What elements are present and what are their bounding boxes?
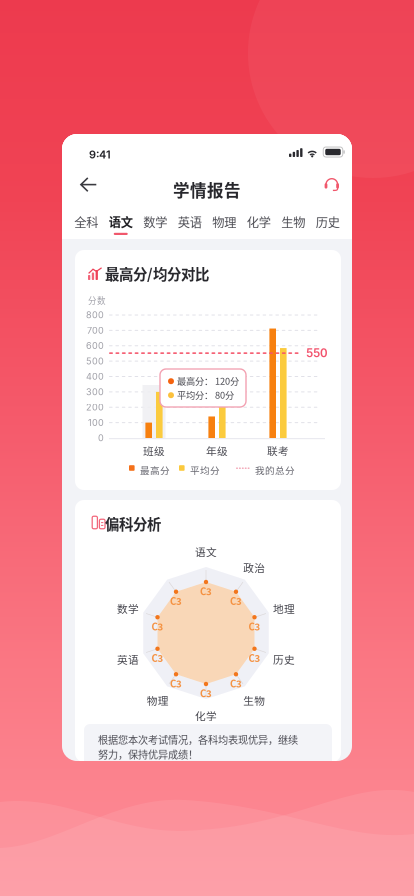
staticText: 英语 [117, 651, 139, 667]
staticText: C3 [170, 594, 182, 608]
staticText: 政治 [243, 560, 265, 575]
staticText: C3 [200, 686, 212, 700]
staticText: 平均分： 80分 [177, 388, 234, 401]
staticText: 语文 [195, 544, 217, 559]
staticText: 500 [86, 356, 104, 367]
staticText: 年级 [206, 443, 228, 458]
staticText: 分数 [88, 294, 106, 306]
button[interactable]: Customer service [308, 172, 344, 207]
staticText: 物理 [147, 692, 169, 708]
button[interactable]: 语文 [103, 208, 138, 240]
staticText: 语文 [109, 213, 133, 231]
staticText: C3 [170, 676, 182, 690]
staticText: C3 [248, 619, 260, 633]
staticText: 班级 [143, 443, 165, 458]
button[interactable]: 英语 [172, 208, 207, 240]
staticText: 最高分/均分对比 [105, 263, 209, 284]
staticText: 学情报告 [173, 177, 241, 201]
staticText: 化学 [247, 213, 271, 231]
staticText: 物理 [212, 213, 236, 231]
staticText: C3 [200, 584, 212, 598]
staticText: 600 [86, 340, 104, 351]
staticText: 地理 [273, 601, 295, 616]
button[interactable]: 生物 [276, 208, 310, 240]
staticText: 数学 [143, 213, 167, 231]
button[interactable]: 化学 [241, 208, 276, 240]
staticText: 英语 [178, 213, 202, 231]
staticText: 400 [86, 371, 104, 382]
staticText: 300 [86, 386, 104, 397]
staticText: 生物 [243, 692, 265, 708]
staticText: 根据您本次考试情况，各科均表现优异，继续 努力，保持优异成绩！ [98, 732, 298, 761]
staticText: 700 [87, 325, 104, 336]
staticText: 100 [88, 417, 104, 428]
staticText: C3 [151, 619, 163, 633]
staticText: 200 [86, 402, 104, 413]
button[interactable]: Back [62, 172, 104, 207]
staticText: 历史 [273, 651, 295, 667]
staticText: 我的总分 [255, 463, 295, 477]
staticText: 平均分 [190, 463, 220, 477]
staticText: 最高分 [140, 463, 170, 477]
staticText: C3 [151, 651, 163, 665]
staticText: C3 [230, 676, 242, 690]
button[interactable]: 数学 [138, 208, 172, 240]
staticText: 历史 [316, 213, 340, 231]
staticText: 800 [86, 309, 104, 320]
staticText: 0 [98, 432, 104, 443]
staticText: C3 [230, 594, 242, 608]
button[interactable]: 历史 [310, 208, 345, 240]
staticText: 联考 [267, 443, 289, 458]
button[interactable]: 物理 [207, 208, 241, 240]
staticText: 全科 [74, 213, 98, 231]
staticText: 化学 [195, 708, 217, 723]
staticText: 生物 [281, 213, 305, 231]
staticText: 数学 [117, 601, 139, 616]
staticText: 最高分： 120分 [177, 374, 239, 387]
staticText: 9:41 [89, 148, 111, 161]
button[interactable]: 全科 [69, 208, 103, 240]
staticText: C3 [248, 651, 260, 665]
staticText: 偏科分析 [105, 513, 161, 534]
staticText: 550 [306, 346, 328, 360]
